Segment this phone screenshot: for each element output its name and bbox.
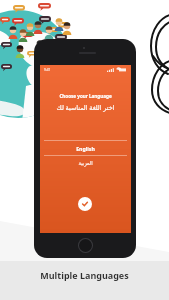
staticText: Multiple Languages	[40, 269, 129, 281]
staticText: 9:41	[44, 68, 51, 72]
staticText: English	[76, 145, 95, 152]
staticText: Choose your Language	[40, 93, 131, 99]
button[interactable]: العربية	[40, 156, 131, 170]
staticText: اختر اللغة المناسبة لك	[40, 103, 131, 112]
staticText: العربية	[78, 160, 93, 166]
button[interactable]: Confirm language	[78, 197, 92, 211]
button[interactable]: English	[40, 141, 131, 155]
